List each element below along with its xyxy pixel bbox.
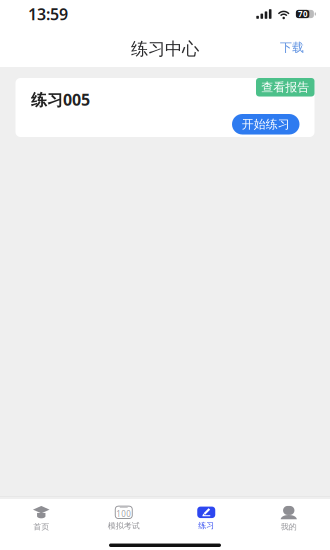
staticText: 下载 [280, 40, 304, 55]
staticText: 100 [116, 508, 131, 519]
staticText: 练习005 [31, 89, 90, 110]
button[interactable]: 查看报告 [256, 78, 314, 96]
button[interactable]: 练习 [165, 501, 247, 535]
staticText: 我的 [281, 522, 297, 532]
staticText: 模拟考试 [108, 521, 140, 531]
staticText: 开始练习 [242, 117, 290, 132]
staticText: 70 [298, 9, 308, 19]
button[interactable]: 下载 [274, 35, 310, 60]
button[interactable]: 首页 [0, 501, 82, 535]
staticText: 练习中心 [131, 38, 199, 60]
button[interactable]: 100 [82, 501, 165, 535]
staticText: 13:59 [28, 3, 68, 25]
staticText: 查看报告 [261, 80, 309, 95]
button[interactable]: 开始练习 [232, 114, 299, 134]
staticText: 首页 [33, 522, 49, 532]
button[interactable]: 我的 [247, 501, 330, 535]
staticText: 练习 [198, 521, 214, 530]
